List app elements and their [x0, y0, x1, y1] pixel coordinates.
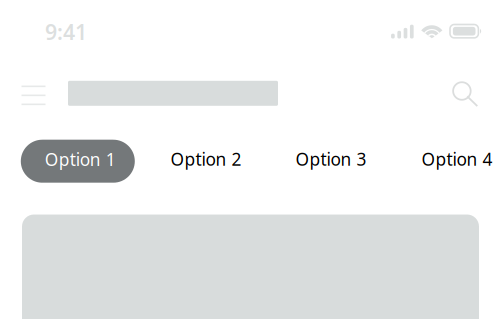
button[interactable]: Option 2	[149, 140, 262, 182]
button[interactable]: Option 3	[274, 140, 387, 182]
button[interactable]: Search	[442, 71, 489, 117]
button[interactable]: Menu	[9, 74, 57, 116]
button[interactable]: Option 1	[21, 140, 135, 183]
staticText: Option 4	[421, 147, 492, 170]
staticText: Option 2	[170, 147, 241, 170]
staticText: 9:41	[45, 18, 87, 46]
staticText: Option 1	[45, 148, 116, 171]
button[interactable]: Option 4	[400, 140, 500, 182]
staticText: Option 3	[295, 147, 366, 170]
